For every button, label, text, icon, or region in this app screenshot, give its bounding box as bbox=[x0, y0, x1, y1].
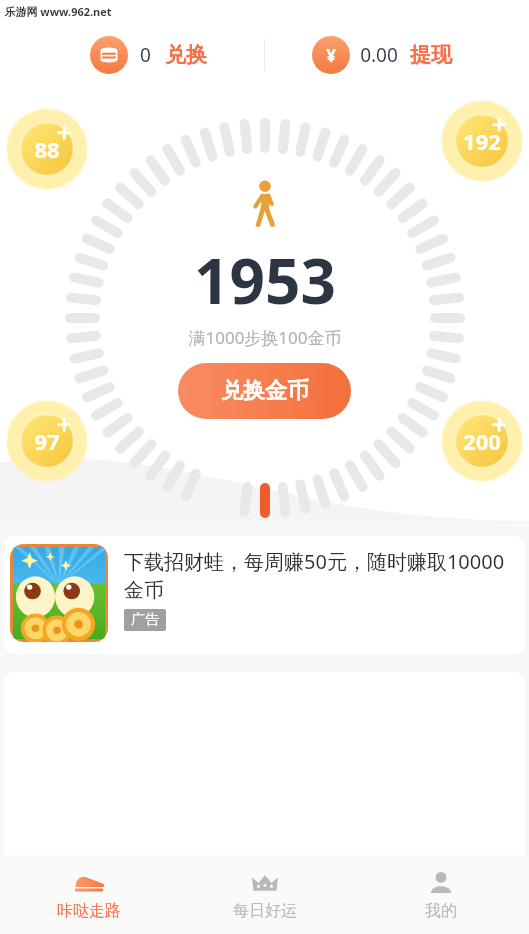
staticText: 我的 bbox=[425, 901, 457, 921]
button[interactable]: Collect 97 coins bbox=[4, 398, 90, 484]
staticText: 1953 bbox=[194, 238, 336, 322]
staticText: 咔哒走路 bbox=[57, 901, 121, 921]
button[interactable]: 兑换金币 bbox=[178, 363, 351, 419]
button[interactable]: 咔哒走路 bbox=[0, 855, 177, 934]
staticText: 88 bbox=[34, 134, 60, 164]
button[interactable]: 我的 bbox=[353, 855, 529, 934]
staticText: 兑换 bbox=[165, 42, 207, 68]
button[interactable]: 下载招财蛙，每周赚50元，随时赚取10000金币 bbox=[4, 536, 525, 654]
staticText: 提现 bbox=[410, 42, 452, 68]
button[interactable]: ¥ bbox=[265, 24, 498, 86]
staticText: 0 bbox=[140, 42, 151, 68]
staticText: 200 bbox=[463, 426, 501, 456]
staticText: 乐游网 www.962.net bbox=[4, 4, 112, 19]
staticText: 每日好运 bbox=[233, 901, 297, 921]
staticText: 0.00 bbox=[360, 42, 398, 68]
staticText: 下载招财蛙，每周赚50元，随时赚取10000金币 bbox=[124, 548, 513, 603]
button[interactable]: Collect 88 coins bbox=[4, 106, 90, 192]
button[interactable]: 每日好运 bbox=[177, 855, 353, 934]
staticText: 97 bbox=[34, 426, 60, 456]
staticText: 满1000步换100金币 bbox=[188, 326, 342, 349]
staticText: ¥ bbox=[326, 44, 336, 67]
staticText: 192 bbox=[463, 126, 501, 156]
button[interactable]: Collect 200 coins bbox=[439, 398, 525, 484]
button[interactable]: Collect 192 coins bbox=[439, 98, 525, 184]
button[interactable]: 0 bbox=[32, 24, 264, 86]
staticText: 兑换金币 bbox=[221, 377, 309, 405]
staticText: 广告 bbox=[131, 611, 159, 629]
